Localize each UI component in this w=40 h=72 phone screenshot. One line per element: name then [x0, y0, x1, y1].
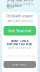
staticText: Terms of service and privacy policy appl…	[5, 55, 34, 57]
staticText: ANYONE YOU MEET	[7, 42, 33, 46]
button[interactable]: Learn More	[3, 61, 36, 68]
staticText: Stay Safe With Anyone	[6, 0, 33, 8]
staticText: safely and securely	[7, 19, 32, 23]
staticText: Check with anyone	[6, 14, 33, 18]
staticText: with confidence	[8, 46, 31, 50]
staticText: Get Started	[8, 28, 31, 33]
staticText: Book Appointment Now	[6, 2, 33, 9]
staticText: SAFELY CHECK	[11, 39, 29, 43]
staticText: Learn More	[12, 63, 27, 66]
button[interactable]: Get Started	[3, 26, 36, 35]
